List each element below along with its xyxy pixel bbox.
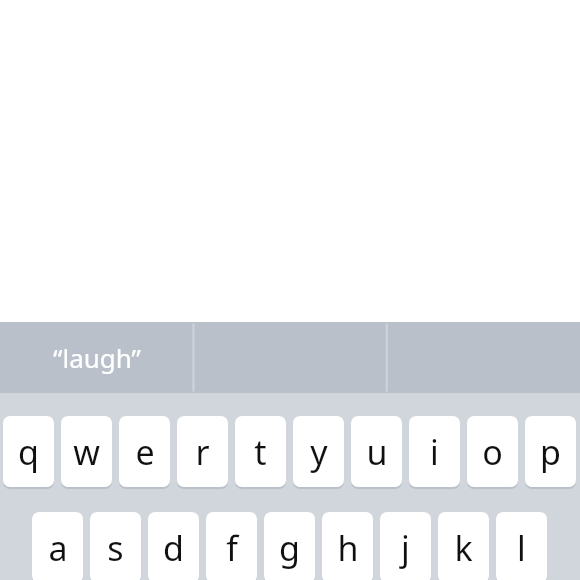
button[interactable]: q <box>3 416 54 487</box>
button[interactable]: a <box>32 512 83 580</box>
button[interactable]: s <box>90 512 141 580</box>
staticText: i <box>430 429 439 475</box>
button[interactable]: f <box>206 512 257 580</box>
button[interactable]: u <box>351 416 402 487</box>
button[interactable]: e <box>119 416 170 487</box>
staticText: “laugh” <box>53 340 141 375</box>
staticText: q <box>18 429 39 475</box>
staticText: p <box>540 429 561 475</box>
button[interactable]: j <box>380 512 431 580</box>
button[interactable]: w <box>61 416 112 487</box>
button[interactable]: o <box>467 416 518 487</box>
staticText: a <box>48 525 68 571</box>
staticText: y <box>310 429 328 475</box>
button[interactable]: k <box>438 512 489 580</box>
staticText: h <box>337 525 359 571</box>
staticText: f <box>226 525 238 571</box>
button[interactable]: l <box>496 512 547 580</box>
staticText: l <box>517 525 526 571</box>
staticText: e <box>135 429 155 475</box>
staticText: w <box>73 429 100 475</box>
staticText: u <box>366 429 388 475</box>
button[interactable]: g <box>264 512 315 580</box>
button[interactable]: r <box>177 416 228 487</box>
staticText: t <box>254 429 267 475</box>
button[interactable]: h <box>322 512 373 580</box>
staticText: r <box>195 429 210 475</box>
button[interactable]: t <box>235 416 286 487</box>
staticText: s <box>107 525 124 571</box>
staticText: g <box>279 525 300 571</box>
staticText: j <box>401 525 410 571</box>
staticText: k <box>454 525 473 571</box>
button[interactable]: d <box>148 512 199 580</box>
staticText: o <box>482 429 503 475</box>
button[interactable]: “laugh” <box>0 322 193 393</box>
button[interactable]: i <box>409 416 460 487</box>
staticText: d <box>163 525 184 571</box>
button[interactable]: p <box>525 416 576 487</box>
button[interactable]: y <box>293 416 344 487</box>
